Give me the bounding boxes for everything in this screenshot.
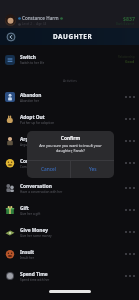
staticText: Switch bbox=[20, 54, 36, 61]
button[interactable]: Gift bbox=[0, 199, 139, 221]
button[interactable]: Back bbox=[6, 32, 16, 42]
staticText: Compliment bbox=[20, 158, 50, 165]
staticText: Constance Harm bbox=[22, 15, 59, 21]
staticText: Compliment her bbox=[20, 165, 44, 169]
button[interactable]: Adopt Out bbox=[0, 108, 139, 130]
staticText: Have a conversation with her bbox=[20, 190, 63, 194]
staticText: Abandon bbox=[20, 92, 42, 99]
staticText: Give Money bbox=[20, 227, 48, 234]
staticText: Good bbox=[125, 59, 135, 64]
staticText: Switch to her life bbox=[20, 61, 45, 65]
staticText: Put her up for adoption bbox=[20, 121, 55, 125]
staticText: $837 bbox=[123, 15, 135, 22]
button[interactable]: Argue bbox=[0, 130, 139, 152]
staticText: DAUGHTER bbox=[53, 32, 93, 41]
staticText: Adopt Out bbox=[20, 114, 45, 121]
staticText: Gift bbox=[20, 205, 29, 212]
button[interactable]: Cancel bbox=[27, 161, 70, 178]
button[interactable]: Abandon bbox=[0, 86, 139, 108]
staticText: Argue bbox=[20, 136, 35, 143]
staticText: Activities bbox=[63, 78, 77, 82]
button[interactable]: Spend Time bbox=[0, 265, 139, 287]
staticText: Give her a gift bbox=[20, 212, 41, 216]
staticText: Relationship bbox=[118, 55, 135, 59]
staticText: Insult her bbox=[20, 256, 35, 260]
staticText: Confirm bbox=[27, 135, 114, 142]
button[interactable]: Switch bbox=[0, 45, 139, 74]
staticText: Bank Balance bbox=[116, 22, 135, 26]
button[interactable]: Conversation bbox=[0, 177, 139, 199]
staticText: Spend Time bbox=[20, 271, 48, 278]
staticText: Argue with her bbox=[20, 143, 42, 147]
staticText: Insult bbox=[20, 249, 35, 256]
staticText: Level 2 - Age 34 bbox=[22, 22, 47, 26]
staticText: Are you sure you want to insult your dau… bbox=[33, 143, 108, 153]
staticText: Conversation bbox=[20, 183, 52, 190]
staticText: Yes bbox=[89, 166, 97, 173]
staticText: Cancel bbox=[41, 166, 56, 173]
staticText: Abandon her bbox=[20, 99, 39, 103]
button[interactable]: Compliment bbox=[0, 152, 139, 174]
button[interactable]: Insult bbox=[0, 243, 139, 265]
button[interactable]: Give Money bbox=[0, 221, 139, 243]
staticText: Spend time with her bbox=[20, 278, 50, 282]
staticText: Give her some money bbox=[20, 234, 52, 238]
button[interactable]: Yes bbox=[71, 161, 114, 178]
